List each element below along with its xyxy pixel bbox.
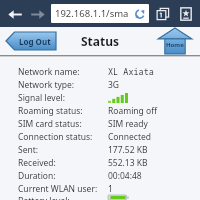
button[interactable]: Forward xyxy=(26,3,48,25)
button[interactable]: 192.168.1.1/sma xyxy=(51,4,149,23)
staticText: Duration: xyxy=(18,170,108,182)
staticText: SIM ready xyxy=(108,118,148,130)
staticText: 192.168.1.1/sma xyxy=(55,7,129,20)
staticText: Network name: xyxy=(18,66,108,78)
button[interactable]: Bookmarks xyxy=(176,4,196,24)
staticText: 177.52 KB xyxy=(108,144,148,156)
staticText: Sent: xyxy=(18,144,108,156)
button[interactable]: Tabs xyxy=(153,4,173,24)
staticText: 00:04:48 xyxy=(108,170,142,182)
staticText: Roaming off xyxy=(108,105,158,117)
staticText: Signal level: xyxy=(18,92,108,104)
staticText: Connected xyxy=(108,131,151,143)
staticText: Home xyxy=(166,41,184,49)
staticText: Current WLAN user: xyxy=(18,183,108,195)
staticText: Roaming status: xyxy=(18,105,108,117)
staticText: Battery level: xyxy=(18,195,108,200)
staticText: Status xyxy=(81,33,120,49)
button[interactable]: Reload xyxy=(133,7,147,21)
staticText: SIM card status: xyxy=(18,118,108,130)
button[interactable]: Home xyxy=(158,28,192,54)
staticText: Connection status: xyxy=(18,131,108,143)
button[interactable]: Log Out xyxy=(6,32,56,50)
button[interactable]: Back xyxy=(4,3,26,25)
staticText: 552.13 KB xyxy=(108,157,148,169)
staticText: Log Out xyxy=(19,36,51,47)
staticText: Network type: xyxy=(18,79,108,91)
staticText: Received: xyxy=(18,157,108,169)
staticText: 1 xyxy=(108,183,113,195)
staticText: XL Axiata xyxy=(108,66,154,78)
staticText: 3G xyxy=(108,79,120,91)
